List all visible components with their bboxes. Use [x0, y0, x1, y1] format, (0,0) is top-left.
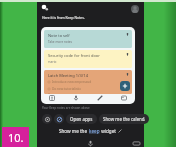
button[interactable]: Draw [97, 95, 103, 101]
other: Edit [118, 129, 122, 133]
staticText: Note to self [48, 33, 70, 38]
staticText: Security code for front door [48, 53, 100, 58]
staticText: widget [100, 128, 116, 134]
staticText: Take more notes [48, 40, 73, 44]
button[interactable]: Keyboard [133, 141, 140, 146]
staticText: Do new tutorialistic [52, 87, 81, 91]
button[interactable]: New note [120, 81, 130, 91]
staticText: 10. [8, 130, 24, 145]
staticText: Open apps [70, 116, 93, 122]
button[interactable]: Latch Meeting 1/3/14 [44, 70, 132, 94]
staticText: Latch Meeting 1/3/14 [48, 73, 88, 78]
button[interactable]: Assistant [41, 4, 49, 12]
button[interactable]: Open apps [66, 114, 97, 124]
button[interactable]: Microphone [87, 140, 94, 147]
staticText: rserio [48, 60, 57, 64]
button[interactable]: Lens [42, 114, 52, 124]
button[interactable]: Explore [54, 114, 64, 124]
staticText: Introduce new empresasd [52, 80, 92, 84]
button[interactable]: Security code for front door [44, 50, 132, 68]
button[interactable]: Note to self [41, 27, 135, 104]
button[interactable]: Image [121, 95, 127, 101]
staticText: Your Keep notes are shown above [42, 106, 90, 110]
button[interactable]: Show me the calendar [99, 114, 149, 124]
button[interactable]: Microphone [73, 95, 79, 101]
staticText: Show me the calendar [103, 116, 145, 122]
staticText: Here it is from Keep Notes. [42, 15, 85, 20]
button[interactable]: Account [131, 5, 139, 13]
staticText: Show me the [59, 128, 89, 134]
staticText: keep [89, 128, 100, 134]
button[interactable]: Note to self [44, 30, 132, 48]
button[interactable]: List [49, 95, 55, 101]
